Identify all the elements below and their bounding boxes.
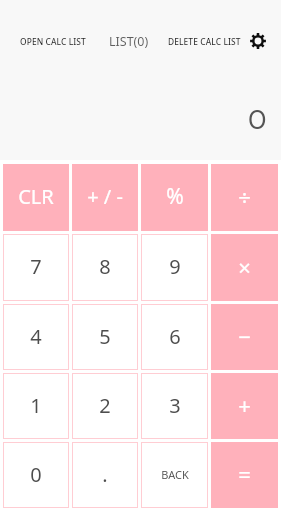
button[interactable]: 2 — [72, 373, 138, 439]
button[interactable]: LIST(0) — [101, 27, 157, 56]
staticText: 4 — [30, 323, 42, 350]
staticText: CLR — [18, 183, 54, 210]
staticText: 0 — [30, 461, 42, 488]
staticText: ÷ — [238, 182, 251, 212]
button[interactable]: 8 — [72, 234, 138, 301]
button[interactable]: OPEN CALC LIST — [12, 29, 94, 54]
staticText: 7 — [30, 253, 42, 280]
staticText: + / - — [87, 183, 123, 210]
staticText: OPEN CALC LIST — [20, 36, 86, 47]
button[interactable]: = — [211, 442, 278, 508]
staticText: 5 — [99, 323, 111, 350]
button[interactable]: 7 — [3, 234, 69, 301]
button[interactable]: × — [211, 234, 278, 301]
button[interactable]: 3 — [141, 373, 208, 439]
staticText: LIST(0) — [109, 33, 149, 50]
staticText: 2 — [99, 392, 111, 419]
staticText: . — [102, 461, 108, 488]
button[interactable]: Settings — [246, 29, 270, 53]
button[interactable]: 4 — [3, 304, 69, 370]
staticText: + — [238, 390, 251, 420]
staticText: × — [238, 252, 251, 282]
staticText: 1 — [30, 392, 42, 419]
staticText: − — [238, 321, 251, 351]
staticText: % — [166, 182, 184, 211]
staticText: 6 — [169, 323, 181, 350]
staticText: 8 — [99, 253, 111, 280]
button[interactable]: . — [72, 442, 138, 508]
button[interactable]: % — [141, 164, 208, 231]
button[interactable]: 1 — [3, 373, 69, 439]
button[interactable]: BACK — [141, 442, 208, 508]
staticText: 0 — [248, 102, 267, 137]
staticText: 3 — [169, 392, 181, 419]
button[interactable]: ÷ — [211, 164, 278, 231]
button[interactable]: + / - — [72, 164, 138, 231]
button[interactable]: DELETE CALC LIST — [160, 29, 249, 54]
staticText: BACK — [161, 467, 189, 482]
staticText: 9 — [169, 253, 181, 280]
button[interactable]: 9 — [141, 234, 208, 301]
staticText: = — [238, 459, 251, 489]
button[interactable]: − — [211, 304, 278, 370]
button[interactable]: 5 — [72, 304, 138, 370]
button[interactable]: 6 — [141, 304, 208, 370]
button[interactable]: 0 — [3, 442, 69, 508]
button[interactable]: + — [211, 373, 278, 439]
staticText: DELETE CALC LIST — [168, 36, 241, 47]
button[interactable]: CLR — [3, 164, 69, 231]
